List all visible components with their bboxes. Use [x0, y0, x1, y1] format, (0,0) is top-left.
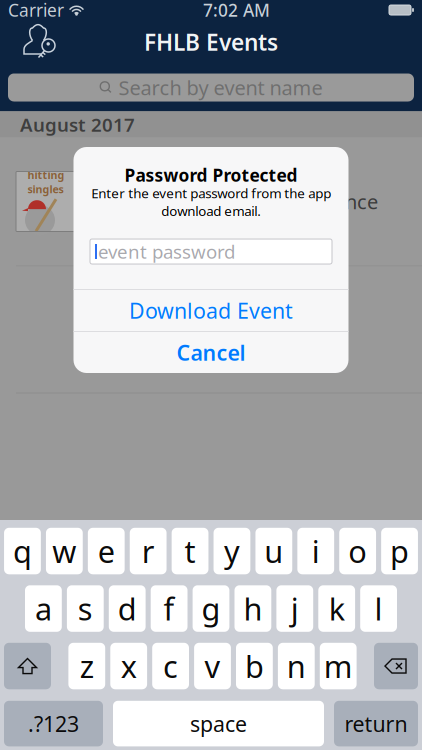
button[interactable]: space: [113, 701, 324, 746]
staticText: v: [204, 646, 220, 686]
staticText: x: [121, 646, 137, 686]
staticText: m: [324, 646, 353, 686]
button[interactable]: Cancel: [73, 332, 348, 373]
button[interactable]: a: [25, 585, 62, 632]
staticText: l: [375, 588, 383, 629]
staticText: 7:02 AM: [203, 0, 270, 21]
staticText: q: [13, 531, 32, 571]
button[interactable]: s: [67, 585, 104, 632]
button[interactable]: c: [152, 643, 189, 689]
staticText: f: [164, 588, 175, 629]
button[interactable]: e: [88, 528, 125, 574]
staticText: i: [312, 531, 320, 571]
staticText: b: [245, 646, 264, 686]
button[interactable]: t: [172, 528, 208, 574]
staticText: Download Event: [129, 296, 293, 325]
button[interactable]: return: [334, 701, 418, 746]
button[interactable]: w: [46, 528, 83, 574]
button[interactable]: k: [318, 585, 355, 632]
button[interactable]: z: [68, 643, 105, 689]
button[interactable]: l: [360, 585, 397, 632]
staticText: Search by event name: [118, 74, 322, 101]
staticText: d: [118, 588, 137, 629]
button[interactable]: Shift: [4, 643, 51, 689]
button[interactable]: m: [320, 643, 357, 689]
staticText: space: [190, 709, 247, 738]
staticText: r: [142, 531, 155, 571]
button[interactable]: n: [278, 643, 315, 689]
staticText: event password: [98, 239, 235, 264]
button[interactable]: v: [194, 643, 231, 689]
button[interactable]: d: [109, 585, 146, 632]
staticText: g: [201, 588, 220, 629]
button[interactable]: x: [110, 643, 147, 689]
button[interactable]: b: [236, 643, 273, 689]
staticText: w: [52, 531, 76, 571]
staticText: z: [80, 646, 94, 686]
staticText: c: [163, 646, 178, 686]
button[interactable]: o: [339, 528, 376, 574]
button[interactable]: y: [213, 528, 250, 574]
staticText: u: [264, 531, 283, 571]
staticText: a: [35, 588, 52, 629]
staticText: .?123: [28, 709, 79, 738]
button[interactable]: g: [193, 585, 229, 632]
staticText: August 2017: [20, 112, 135, 137]
staticText: return: [344, 709, 407, 738]
staticText: Password Protected: [124, 163, 297, 186]
staticText: h: [243, 588, 262, 629]
button[interactable]: Delete: [374, 643, 418, 689]
staticText: hitting singles: [27, 168, 64, 196]
staticText: k: [329, 588, 345, 629]
staticText: Carrier: [8, 0, 64, 21]
button[interactable]: Download Event: [73, 290, 348, 331]
button[interactable]: q: [4, 528, 41, 574]
button[interactable]: r: [130, 528, 166, 574]
staticText: Enter the event password from the app do…: [91, 184, 331, 220]
staticText: FHLB Events: [144, 27, 278, 57]
staticText: Cancel: [176, 338, 245, 367]
staticText: y: [224, 531, 240, 571]
staticText: p: [390, 531, 409, 571]
staticText: n: [287, 646, 306, 686]
button[interactable]: j: [276, 585, 313, 632]
staticText: ence: [334, 188, 378, 215]
staticText: e: [98, 531, 115, 571]
staticText: t: [184, 531, 195, 571]
button[interactable]: Account: [4, 22, 60, 62]
button[interactable]: p: [381, 528, 418, 574]
staticText: o: [348, 531, 367, 571]
staticText: j: [291, 588, 299, 629]
button[interactable]: u: [255, 528, 292, 574]
button[interactable]: i: [297, 528, 334, 574]
button[interactable]: .?123: [4, 701, 103, 746]
button[interactable]: f: [151, 585, 187, 632]
button[interactable]: h: [234, 585, 271, 632]
staticText: s: [78, 588, 93, 629]
